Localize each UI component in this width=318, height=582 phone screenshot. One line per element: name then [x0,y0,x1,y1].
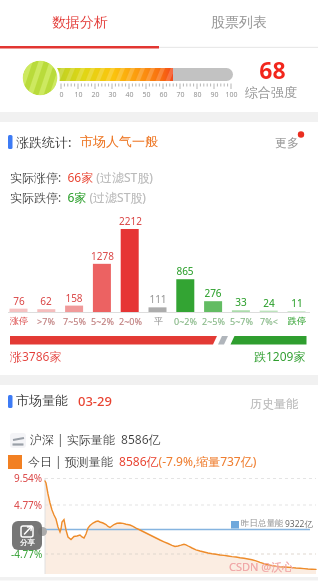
staticText: 7%< [260,315,278,327]
staticText: CSDN @沃心 [229,559,294,574]
staticText: 市场量能 [16,392,68,408]
staticText: 76 [13,294,25,308]
staticText: 2~5% [202,315,225,327]
staticText: 0 [59,90,64,100]
staticText: 涨3786家 [10,348,62,364]
staticText: 40 [125,90,134,100]
staticText: 综合强度 [245,84,297,100]
staticText: 平 [154,315,163,326]
staticText: 5~2% [91,315,114,327]
staticText: 80 [193,90,202,100]
staticText: 沪深 | 实际量能 8586亿 [30,431,161,447]
staticText: 865 [176,264,194,278]
staticText: 2212 [119,214,142,228]
staticText: 7~5% [63,315,86,327]
staticText: 68 [259,54,286,85]
staticText: 33 [235,295,247,309]
staticText: 更多 [275,135,299,150]
staticText: 276 [204,286,222,300]
staticText: 1278 [91,249,114,263]
staticText: 涨停 [10,315,28,326]
staticText: 03-29 [78,392,112,410]
staticText: 数据分析 [52,14,108,32]
staticText: 9322亿 [285,518,313,530]
staticText: 100 [225,90,238,100]
staticText: 今日 | 预测量能 8586亿(-7.9%,缩量737亿) [28,453,257,469]
button[interactable]: 历史量能 [250,394,310,412]
staticText: 跌1209家 [254,348,306,364]
staticText: 跌停 [288,315,306,326]
staticText: 62 [40,294,52,308]
staticText: 111 [149,292,167,306]
staticText: 5~7% [230,315,253,327]
staticText: 158 [65,291,83,305]
staticText: 60 [159,90,168,100]
button[interactable]: 数据分析 [0,0,159,46]
staticText: 50 [142,90,151,100]
staticText: 30 [108,90,117,100]
staticText: 9.54% [14,471,43,485]
staticText: 市场人气一般 [80,133,158,149]
staticText: >7% [37,315,55,327]
staticText: 昨日总量能 [241,518,284,529]
staticText: 0~2% [174,315,197,327]
staticText: 历史量能 [250,396,298,411]
staticText: 2~0% [119,315,142,327]
staticText: -4.77% [11,547,43,561]
staticText: 实际跌停: 6家 (过滤ST股) [10,189,146,205]
staticText: 90 [210,90,219,100]
button[interactable]: 分享 [12,521,42,550]
staticText: 10 [74,90,83,100]
button[interactable]: 股票列表 [159,0,318,46]
staticText: 24 [263,296,275,310]
staticText: 70 [176,90,185,100]
staticText: 分享 [20,538,35,547]
staticText: 股票列表 [211,14,267,32]
button[interactable]: 更多 [275,132,309,152]
staticText: 实际涨停: 66家 (过滤ST股) [10,169,153,185]
staticText: 4.77% [14,498,43,512]
staticText: 涨跌统计: [16,133,72,151]
staticText: 20 [91,90,100,100]
staticText: 11 [291,296,303,310]
